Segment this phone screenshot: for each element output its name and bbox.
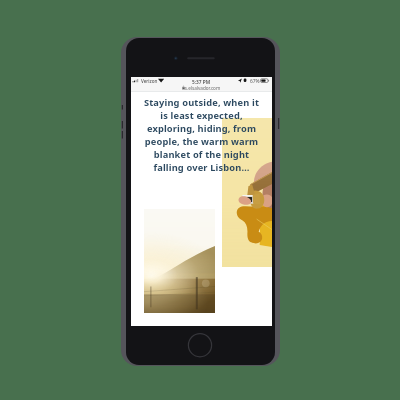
staticText: 5:37 PM [192,79,211,86]
staticText: Staying outside, when it is least expect… [141,96,262,174]
button[interactable]: Home [188,334,211,357]
staticText: 67% [250,78,260,85]
button[interactable]: Photo: pouring golden oil [222,118,272,267]
staticText: Verizon [141,78,158,84]
staticText: us.elsalvador.com [182,85,221,91]
button[interactable]: us.elsalvador.com [131,84,272,91]
button[interactable]: Photo: sunset over the hills [144,209,215,313]
